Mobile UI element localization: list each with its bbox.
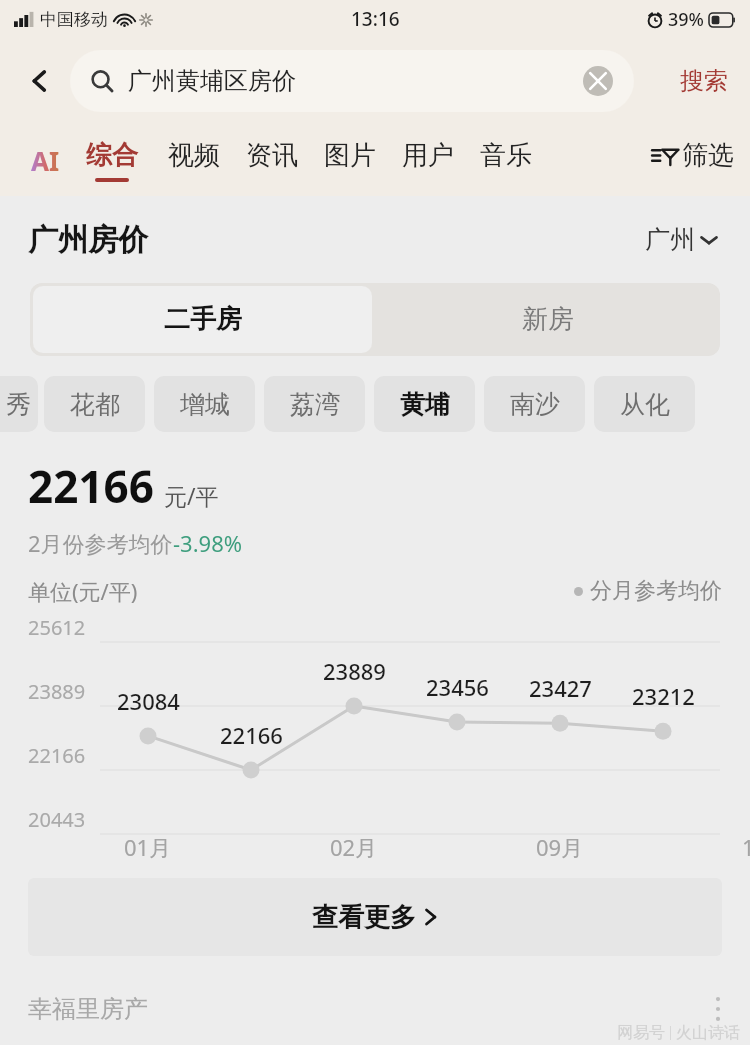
staticText: 中国移动: [40, 9, 108, 30]
staticText: 09月: [536, 832, 584, 862]
staticText: 23084: [117, 686, 180, 716]
button[interactable]: 视频: [166, 136, 222, 185]
staticText: 秀: [6, 389, 31, 420]
staticText: 广州黄埔区房价: [128, 66, 296, 96]
staticText: 2月份参考均价: [28, 528, 173, 558]
staticText: 单位(元/平): [28, 576, 138, 606]
button[interactable]: 增城: [154, 376, 255, 432]
staticText: 搜索: [680, 66, 728, 96]
staticText: 音乐: [480, 139, 532, 172]
staticText: 用户: [402, 139, 454, 172]
staticText: 20443: [28, 806, 86, 833]
staticText: 视频: [168, 139, 220, 172]
staticText: 广州房价: [28, 221, 148, 259]
button[interactable]: 筛选: [649, 136, 736, 185]
button[interactable]: AI: [22, 137, 68, 183]
staticText: 火山诗话: [676, 1023, 740, 1043]
staticText: 幸福里房产: [28, 994, 148, 1024]
staticText: 花都: [70, 389, 120, 420]
button[interactable]: 花都: [44, 376, 145, 432]
button[interactable]: 南沙: [484, 376, 585, 432]
button[interactable]: 广州: [641, 218, 722, 261]
staticText: 23889: [28, 678, 86, 705]
button[interactable]: 二手房: [33, 286, 372, 353]
button[interactable]: 图片: [322, 136, 378, 185]
staticText: 13:16: [351, 6, 400, 32]
button[interactable]: 搜索: [666, 56, 742, 106]
staticText: 广州: [645, 224, 695, 255]
button[interactable]: More options: [700, 991, 736, 1027]
staticText: -3.98%: [173, 528, 243, 558]
button[interactable]: 从化: [594, 376, 695, 432]
button[interactable]: Clear: [582, 65, 614, 97]
staticText: 10月: [742, 832, 750, 862]
staticText: AI: [31, 143, 60, 177]
button[interactable]: 用户: [400, 136, 456, 185]
staticText: 筛选: [682, 139, 734, 172]
staticText: 综合: [86, 139, 138, 172]
staticText: 元/平: [164, 480, 219, 511]
staticText: 网易号: [617, 1023, 665, 1043]
button[interactable]: 资讯: [244, 136, 300, 185]
staticText: 23456: [426, 672, 489, 702]
staticText: 23212: [632, 681, 695, 711]
button[interactable]: 查看更多: [28, 878, 722, 956]
staticText: 01月: [124, 832, 172, 862]
staticText: 分月参考均价: [590, 577, 722, 605]
staticText: 查看更多: [312, 901, 416, 934]
staticText: 南沙: [510, 389, 560, 420]
staticText: 39%: [668, 7, 704, 32]
button[interactable]: 荔湾: [264, 376, 365, 432]
button[interactable]: Back: [14, 55, 66, 107]
staticText: 23427: [529, 673, 592, 703]
button[interactable]: 秀: [0, 376, 38, 432]
staticText: 黄埔: [400, 389, 450, 420]
staticText: 图片: [324, 139, 376, 172]
staticText: 02月: [330, 832, 378, 862]
staticText: 22166: [220, 720, 283, 750]
staticText: 荔湾: [290, 389, 340, 420]
button[interactable]: 广州黄埔区房价: [70, 50, 634, 112]
staticText: 资讯: [246, 139, 298, 172]
button[interactable]: 黄埔: [374, 376, 475, 432]
staticText: 增城: [180, 389, 230, 420]
button[interactable]: 新房: [375, 283, 720, 356]
staticText: 新房: [522, 303, 574, 336]
staticText: 22166: [28, 742, 86, 769]
button[interactable]: 音乐: [478, 136, 534, 185]
button[interactable]: 综合: [80, 139, 144, 182]
staticText: 从化: [620, 389, 670, 420]
staticText: 二手房: [164, 303, 242, 336]
staticText: 23889: [323, 656, 386, 686]
staticText: 25612: [28, 614, 86, 641]
staticText: 22166: [28, 456, 154, 516]
